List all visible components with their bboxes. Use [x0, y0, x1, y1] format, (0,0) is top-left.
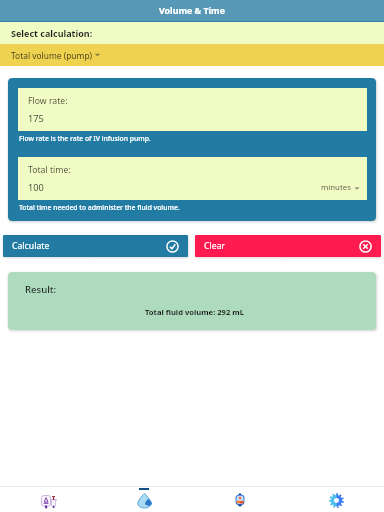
- staticText: Total volume (pump): [11, 50, 93, 61]
- staticText: Select calculation:: [11, 27, 93, 39]
- staticText: 175: [28, 112, 44, 125]
- button[interactable]: Total volume (pump): [0, 44, 384, 66]
- button[interactable]: Volume and time: [96, 487, 192, 512]
- staticText: 100: [28, 181, 44, 194]
- staticText: Total fluid volume: 292 mL: [145, 307, 244, 317]
- staticText: Result:: [25, 283, 57, 296]
- staticText: Total time:: [28, 164, 71, 176]
- button[interactable]: Calculate: [3, 235, 188, 257]
- button[interactable]: Settings: [288, 487, 384, 512]
- staticText: Flow rate:: [28, 95, 68, 107]
- staticText: Volume & Time: [159, 5, 225, 17]
- staticText: Calculate: [12, 240, 50, 252]
- staticText: Total time needed to administer the flui…: [19, 203, 180, 212]
- staticText: Clear: [204, 240, 226, 252]
- button[interactable]: Infusion calculator: [0, 487, 96, 512]
- button[interactable]: minutes: [321, 182, 360, 193]
- button[interactable]: Clear: [195, 235, 381, 257]
- staticText: Flow rate is the rate of IV infusion pum…: [19, 134, 151, 143]
- button[interactable]: Blood transfusion: [192, 487, 288, 512]
- staticText: minutes: [321, 182, 351, 193]
